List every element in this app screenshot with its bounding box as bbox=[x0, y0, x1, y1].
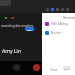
button[interactable]: Save bbox=[63, 66, 71, 70]
staticText: Amy Lin bbox=[2, 48, 22, 55]
button[interactable]: App bbox=[56, 8, 59, 11]
button[interactable]: App bbox=[61, 8, 64, 11]
button[interactable]: Be nice bbox=[43, 29, 74, 37]
button[interactable]: Mute microphone bbox=[13, 64, 20, 71]
staticText: Reminders bbox=[63, 16, 75, 20]
staticText: Be nice bbox=[51, 31, 62, 35]
button[interactable]: App bbox=[51, 8, 54, 11]
button[interactable]: Join bbox=[25, 27, 34, 31]
button[interactable]: App bbox=[66, 8, 69, 11]
staticText: 9:00 AM Jog bbox=[51, 22, 68, 26]
staticText: recording this meeting bbox=[1, 24, 34, 28]
button[interactable]: 9:00 AM Jog bbox=[43, 20, 74, 28]
staticText: Save bbox=[64, 67, 70, 70]
button[interactable]: App bbox=[46, 8, 49, 11]
staticText: Join bbox=[27, 28, 32, 31]
staticText: Done bbox=[50, 68, 58, 72]
button[interactable]: End call bbox=[33, 64, 40, 71]
